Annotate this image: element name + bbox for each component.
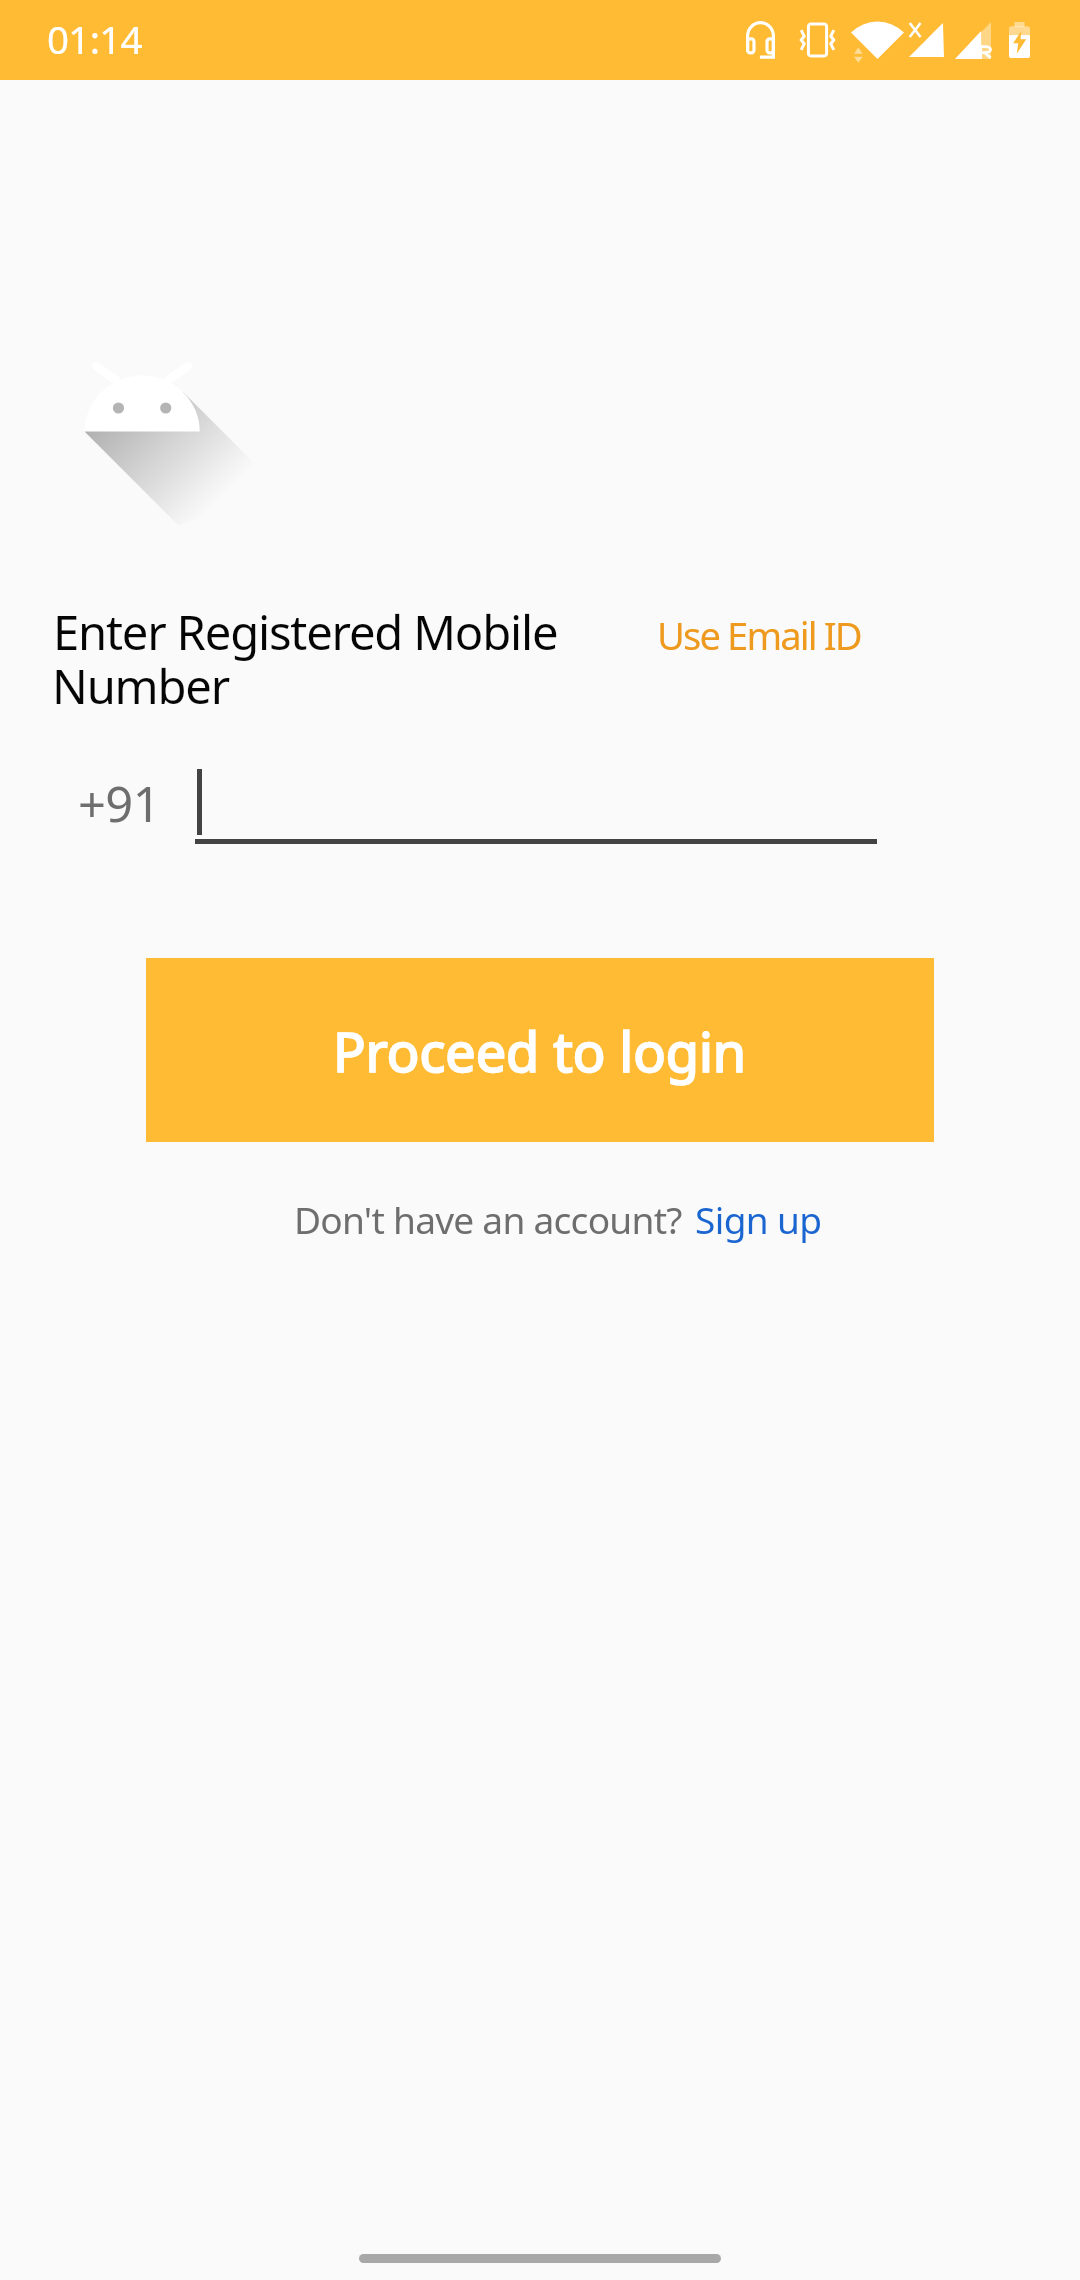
button[interactable]: Mobile number input field	[195, 765, 877, 845]
staticText: Use Email ID	[657, 609, 861, 661]
staticText: Don't have an account?	[294, 1194, 682, 1245]
button[interactable]: Sign up	[695, 1194, 822, 1244]
staticText: Sign up	[695, 1194, 822, 1244]
staticText: +91	[78, 770, 161, 837]
button[interactable]: Use Email ID	[657, 609, 861, 661]
button[interactable]: Proceed to login	[146, 958, 934, 1142]
staticText: Proceed to login	[333, 1014, 747, 1087]
staticText: Number	[52, 654, 230, 718]
staticText: Enter Registered Mobile	[53, 600, 558, 664]
staticText: 01:14	[47, 13, 142, 65]
